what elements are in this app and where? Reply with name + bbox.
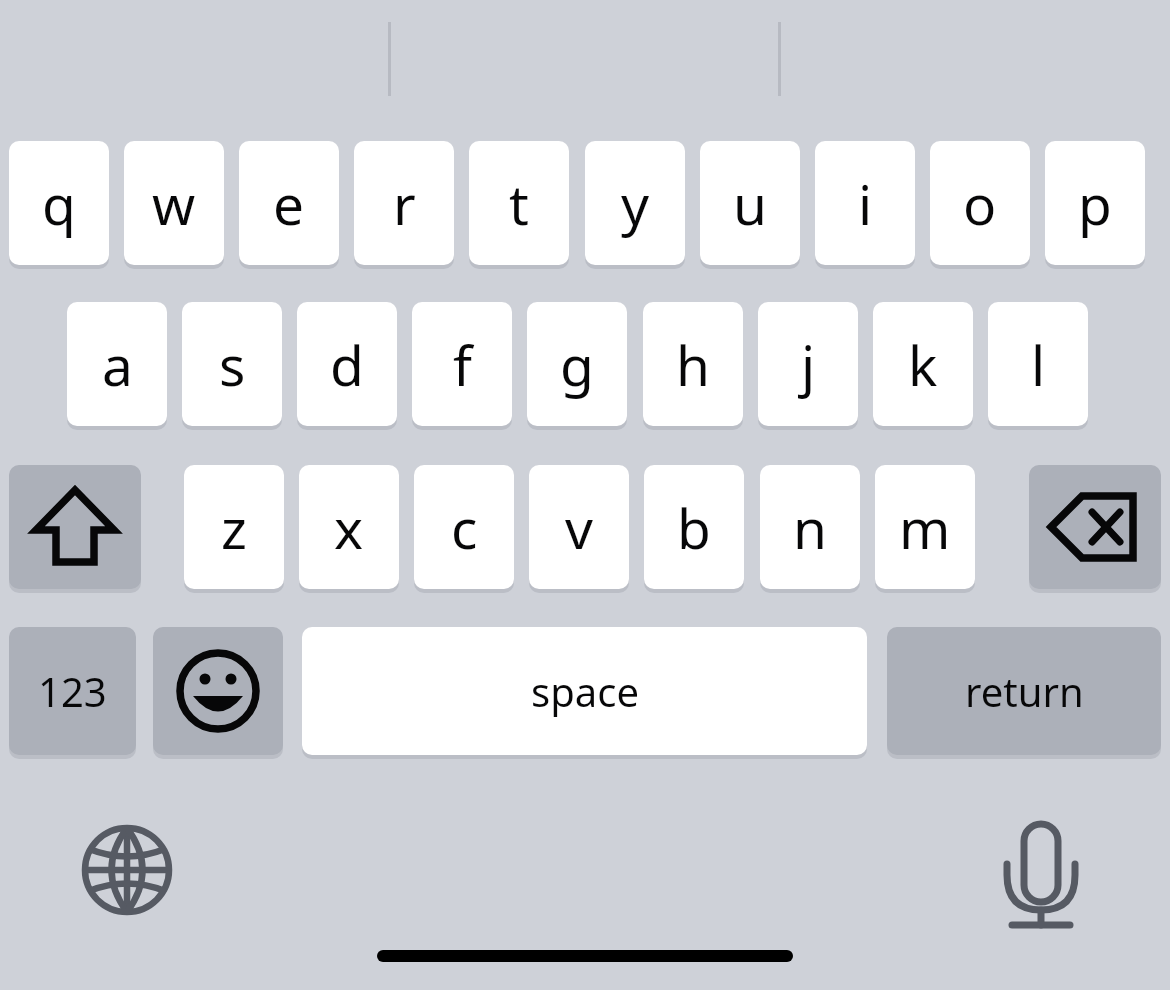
button[interactable]: d — [297, 302, 397, 426]
staticText: p — [1078, 166, 1112, 241]
button[interactable]: i — [815, 141, 915, 265]
staticText: x — [334, 490, 364, 565]
button[interactable]: Shift — [9, 465, 141, 589]
staticText: v — [565, 490, 593, 565]
button[interactable]: m — [875, 465, 975, 589]
staticText: f — [453, 327, 472, 402]
button[interactable]: c — [414, 465, 514, 589]
button[interactable]: space — [302, 627, 867, 755]
staticText: d — [330, 327, 364, 402]
button[interactable]: v — [529, 465, 629, 589]
staticText: l — [1031, 327, 1046, 402]
button[interactable]: k — [873, 302, 973, 426]
staticText: g — [560, 327, 594, 402]
button[interactable]: return — [887, 627, 1161, 755]
button[interactable]: p — [1045, 141, 1145, 265]
staticText: z — [221, 490, 247, 565]
staticText: w — [152, 166, 196, 241]
button[interactable]: q — [9, 141, 109, 265]
button[interactable]: Switch keyboard — [67, 810, 187, 930]
button[interactable]: w — [124, 141, 224, 265]
staticText: r — [393, 166, 416, 241]
staticText: o — [963, 166, 997, 241]
staticText: n — [793, 490, 827, 565]
staticText: a — [102, 327, 133, 402]
button[interactable]: l — [988, 302, 1088, 426]
button[interactable]: Emoji — [153, 627, 283, 755]
button[interactable]: 123 — [9, 627, 136, 755]
staticText: y — [621, 166, 650, 241]
staticText: space — [531, 664, 639, 718]
button[interactable]: n — [760, 465, 860, 589]
staticText: return — [965, 664, 1084, 718]
button[interactable]: e — [239, 141, 339, 265]
button[interactable]: t — [469, 141, 569, 265]
staticText: c — [451, 490, 478, 565]
button[interactable]: b — [644, 465, 744, 589]
staticText: m — [899, 490, 951, 565]
button[interactable]: r — [354, 141, 454, 265]
staticText: i — [858, 166, 873, 241]
button[interactable]: a — [67, 302, 167, 426]
staticText: 123 — [38, 664, 107, 718]
button[interactable]: Dictate — [981, 810, 1101, 930]
staticText: b — [677, 490, 711, 565]
button[interactable]: y — [585, 141, 685, 265]
staticText: e — [273, 166, 305, 241]
button[interactable]: o — [930, 141, 1030, 265]
button[interactable]: h — [643, 302, 743, 426]
button[interactable]: z — [184, 465, 284, 589]
button[interactable]: g — [527, 302, 627, 426]
button[interactable]: u — [700, 141, 800, 265]
staticText: h — [676, 327, 710, 402]
button[interactable]: x — [299, 465, 399, 589]
button[interactable]: Backspace — [1029, 465, 1161, 589]
button[interactable]: j — [758, 302, 858, 426]
button[interactable]: s — [182, 302, 282, 426]
staticText: s — [219, 327, 246, 402]
staticText: q — [42, 166, 76, 241]
staticText: j — [801, 327, 816, 402]
staticText: t — [509, 166, 529, 241]
staticText: u — [733, 166, 767, 241]
button[interactable]: f — [412, 302, 512, 426]
staticText: k — [908, 327, 938, 402]
